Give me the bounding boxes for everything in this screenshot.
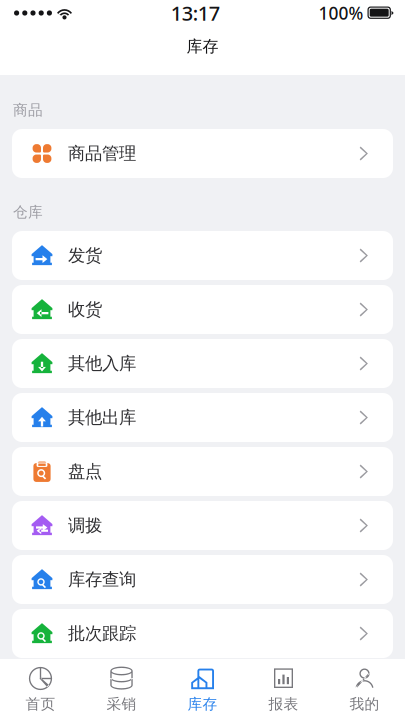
button[interactable]: 收货	[12, 285, 393, 334]
staticText: 100%	[318, 1, 363, 24]
button[interactable]: 盘点	[12, 447, 393, 496]
button[interactable]: 其他出库	[12, 393, 393, 442]
button[interactable]: 采销	[81, 659, 162, 720]
staticText: 收货	[68, 299, 102, 320]
staticText: 我的	[349, 695, 379, 713]
staticText: 库存	[186, 37, 218, 56]
button[interactable]: 库存	[162, 659, 243, 720]
staticText: 其他出库	[68, 407, 136, 428]
staticText: 首页	[25, 695, 55, 713]
staticText: 仓库	[13, 203, 43, 221]
staticText: 采销	[106, 695, 136, 713]
button[interactable]: 批次跟踪	[12, 609, 393, 658]
staticText: 其他入库	[68, 353, 136, 374]
button[interactable]: 库存查询	[12, 555, 393, 604]
staticText: 库存	[187, 695, 217, 713]
staticText: 商品管理	[68, 143, 136, 164]
staticText: 报表	[268, 695, 298, 713]
staticText: 调拨	[68, 515, 102, 536]
button[interactable]: 发货	[12, 231, 393, 280]
staticText: 批次跟踪	[68, 623, 136, 644]
staticText: 发货	[68, 245, 102, 266]
button[interactable]: 其他入库	[12, 339, 393, 388]
staticText: 库存查询	[68, 569, 136, 590]
staticText: 盘点	[68, 461, 102, 482]
button[interactable]: 报表	[243, 659, 324, 720]
button[interactable]: 商品管理	[12, 129, 393, 178]
staticText: 商品	[13, 101, 43, 119]
button[interactable]: 首页	[0, 659, 81, 720]
button[interactable]: 我的	[324, 659, 405, 720]
staticText: 13:17	[171, 0, 220, 26]
button[interactable]: 调拨	[12, 501, 393, 550]
